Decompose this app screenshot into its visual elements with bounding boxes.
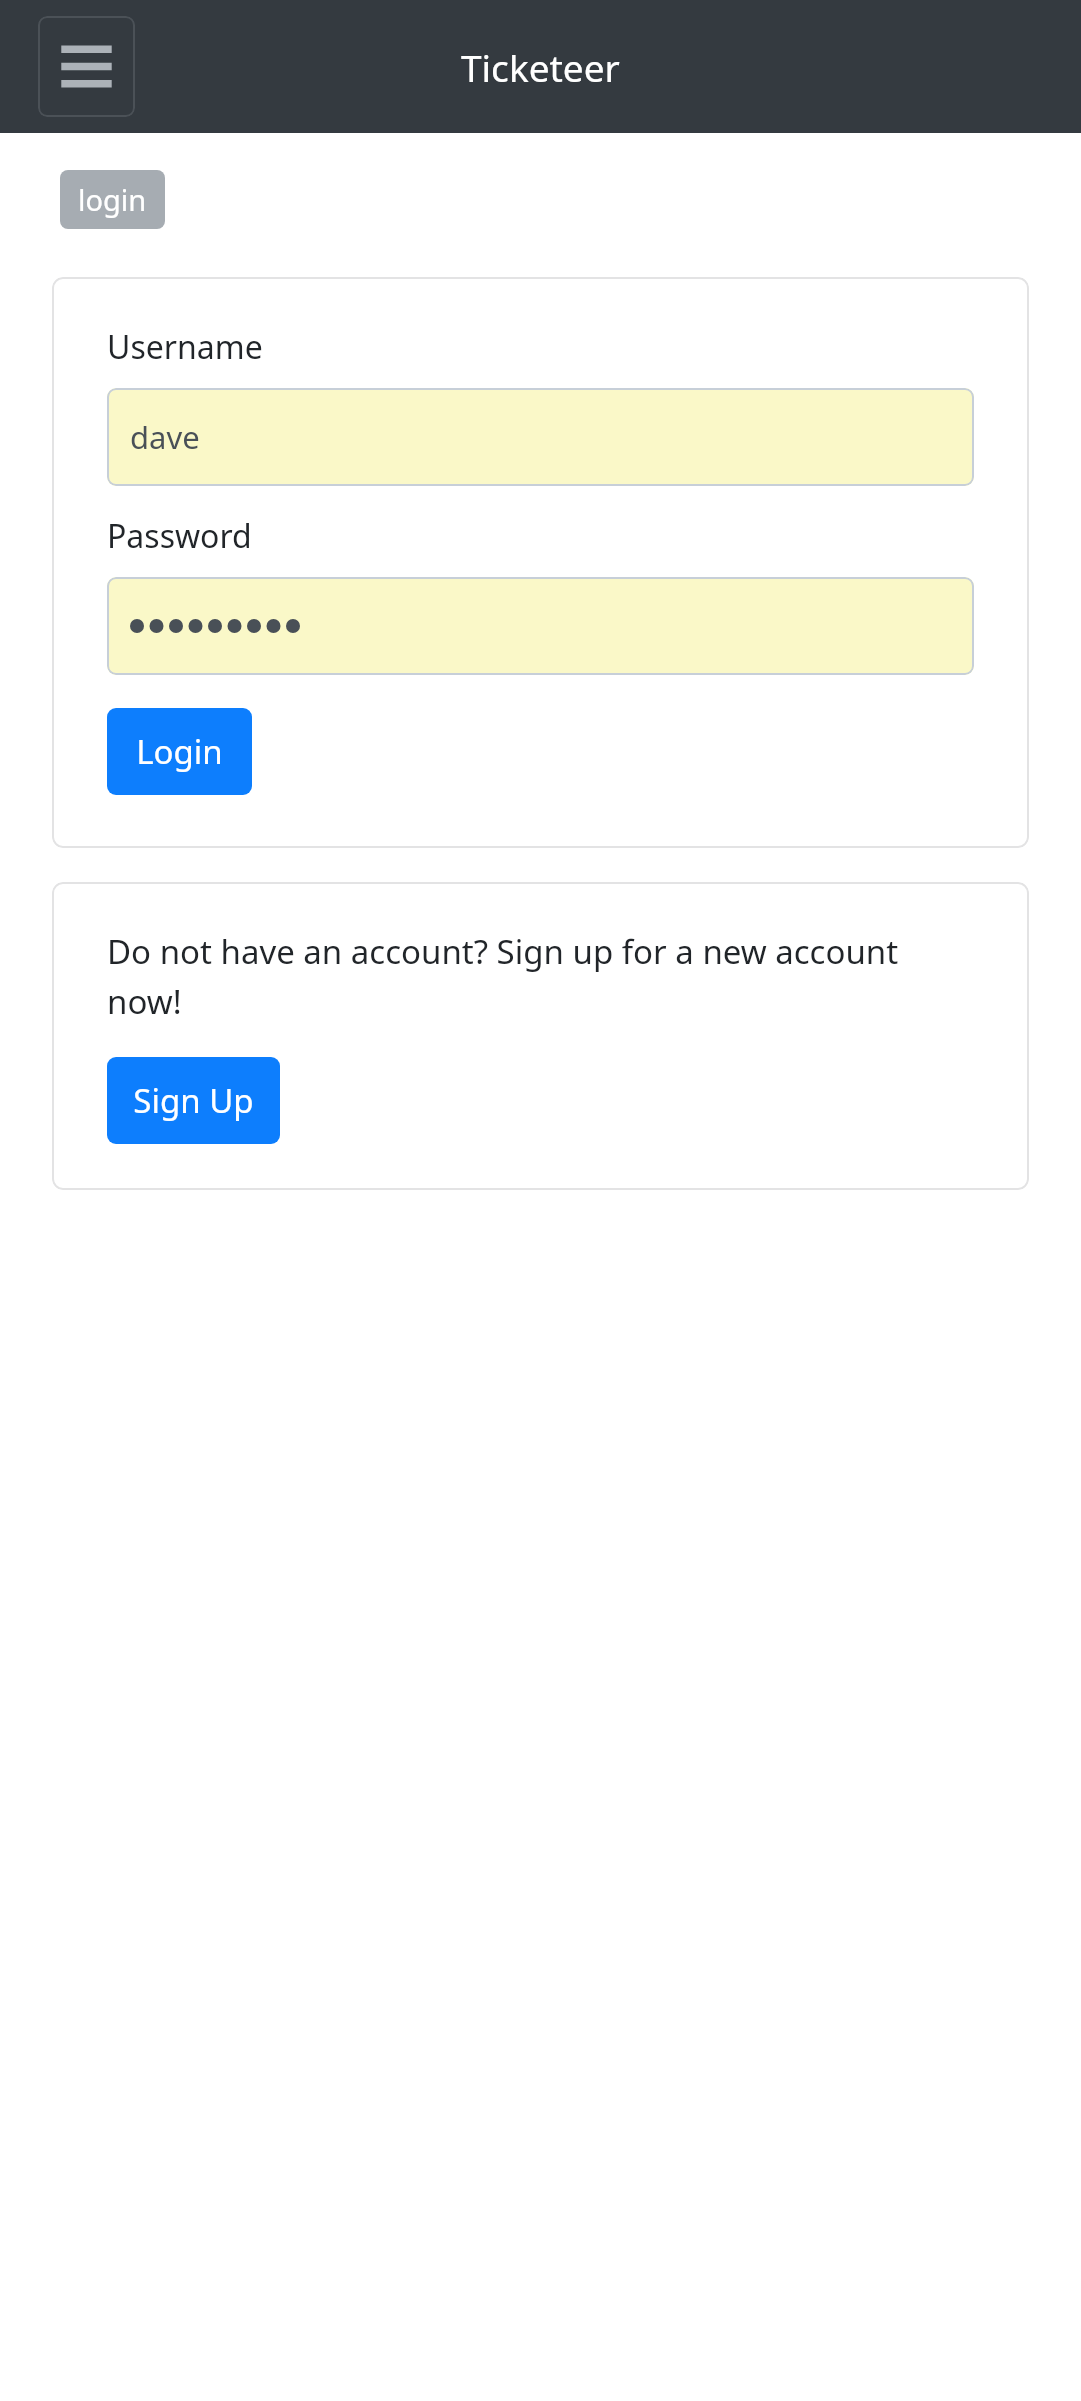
button[interactable]: dave	[107, 388, 974, 486]
staticText: Username	[107, 325, 263, 369]
button[interactable]: Login	[107, 708, 252, 795]
button[interactable]	[107, 577, 974, 675]
staticText: Do not have an account? Sign up for a ne…	[107, 929, 974, 1024]
staticText: login	[78, 180, 147, 219]
button[interactable]: login	[60, 170, 165, 229]
staticText: Ticketeer	[461, 42, 620, 92]
staticText: Login	[136, 729, 223, 774]
staticText: dave	[130, 416, 200, 458]
staticText: Password	[107, 514, 252, 558]
button[interactable]: Open navigation menu	[38, 16, 135, 117]
button[interactable]: Sign Up	[107, 1057, 280, 1144]
staticText: Sign Up	[133, 1078, 254, 1123]
